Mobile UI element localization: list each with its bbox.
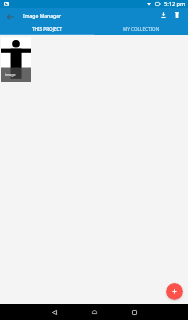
- button[interactable]: image: [1, 37, 31, 82]
- button[interactable]: Home: [87, 305, 101, 319]
- staticText: image: [5, 72, 16, 77]
- button[interactable]: Back: [4, 10, 17, 23]
- staticText: 5:12 pm: [164, 0, 186, 8]
- button[interactable]: Download: [157, 9, 169, 21]
- staticText: THIS PROJECT: [32, 26, 63, 32]
- staticText: MY COLLECTION: [123, 26, 160, 32]
- button[interactable]: Delete: [171, 9, 183, 21]
- button[interactable]: MY COLLECTION: [94, 24, 188, 34]
- button[interactable]: Add: [166, 283, 183, 300]
- button[interactable]: Recents: [127, 305, 141, 319]
- staticText: Image Manager: [23, 13, 62, 20]
- button[interactable]: Back: [47, 305, 61, 319]
- button[interactable]: THIS PROJECT: [0, 24, 94, 34]
